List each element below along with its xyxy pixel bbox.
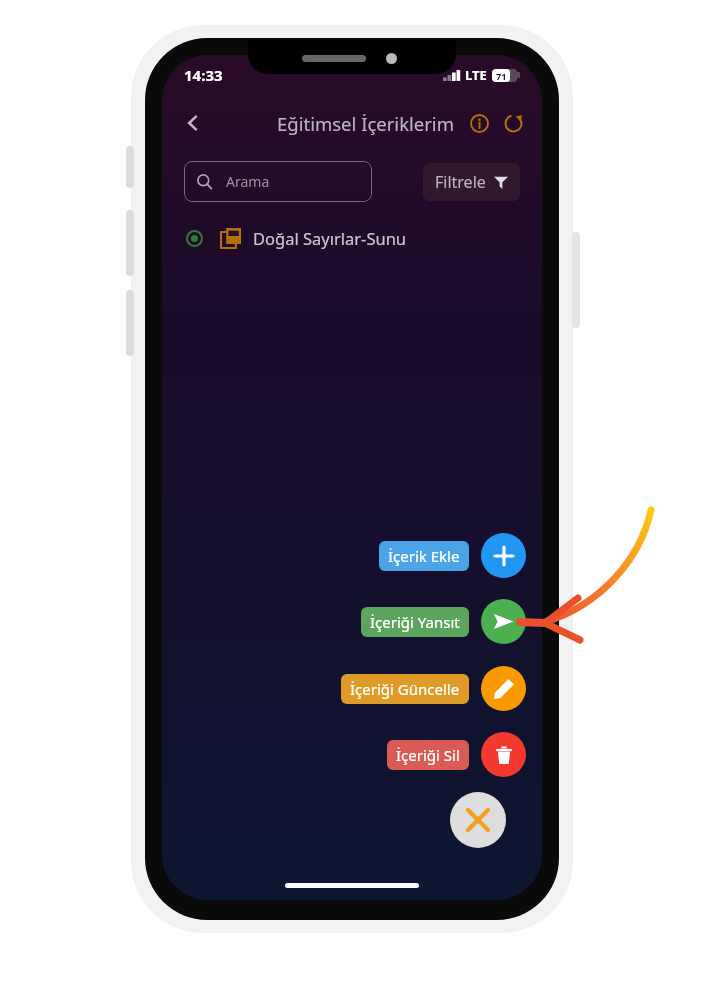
staticText: Filtrele [435,171,486,193]
button[interactable]: İçerik Ekle [379,541,469,571]
staticText: Doğal Sayırlar-Sunu [253,227,407,249]
button[interactable]: Close menu [450,792,506,848]
button[interactable]: Doğal Sayırlar-Sunu [162,217,542,259]
button[interactable]: İçeriği Sil [481,732,526,777]
staticText: İçerik Ekle [388,546,460,566]
button[interactable]: Refresh [498,108,528,138]
button[interactable]: Back [176,106,210,140]
button[interactable]: Info [464,108,494,138]
button[interactable]: İçerik Ekle [481,533,526,578]
button[interactable]: İçeriği Güncelle [341,674,469,704]
staticText: 14:33 [184,65,223,85]
staticText: Arama [226,172,270,191]
button[interactable]: Filtrele [423,163,520,201]
button[interactable]: İçeriği Yansıt [481,599,526,644]
staticText: Eğitimsel İçeriklerim [277,111,454,136]
button[interactable]: İçeriği Güncelle [481,666,526,711]
staticText: LTE [465,66,487,84]
staticText: 71 [496,70,507,82]
staticText: İçeriği Güncelle [350,679,460,699]
staticText: İçeriği Yansıt [370,612,460,632]
staticText: İçeriği Sil [396,745,460,765]
button[interactable]: İçeriği Sil [387,740,469,770]
button[interactable]: İçeriği Yansıt [361,607,469,637]
button[interactable]: Arama [184,161,372,202]
